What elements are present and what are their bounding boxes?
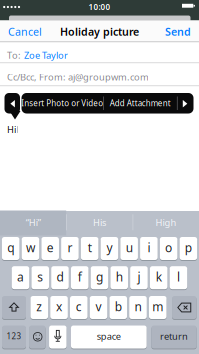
button[interactable]: o	[160, 236, 177, 260]
button[interactable]: i	[140, 236, 158, 260]
staticText: v	[95, 299, 101, 315]
button[interactable]: Cc/Bcc, From: aj@groupwm.com	[0, 66, 199, 87]
button[interactable]: 123	[2, 325, 26, 349]
button[interactable]: space	[71, 325, 147, 349]
staticText: 10:00	[88, 2, 110, 12]
button[interactable]: v	[90, 295, 107, 319]
button[interactable]: n	[129, 295, 147, 319]
staticText: Holiday picture	[60, 24, 139, 39]
button[interactable]: f	[71, 266, 88, 290]
staticText: To:	[7, 49, 21, 61]
staticText: space	[97, 330, 121, 342]
button[interactable]: e	[41, 236, 59, 260]
button[interactable]: a	[12, 266, 29, 290]
button[interactable]: t	[81, 236, 98, 260]
button[interactable]: w	[22, 236, 39, 260]
button[interactable]: r	[61, 236, 79, 260]
button[interactable]: d	[51, 266, 69, 290]
staticText: 123	[6, 331, 21, 341]
button[interactable]: “Hi”	[0, 211, 66, 234]
button[interactable]: His	[66, 211, 132, 234]
button[interactable]: Cancel	[8, 24, 42, 39]
staticText: Add Attachment	[110, 98, 171, 108]
staticText: p	[185, 240, 192, 256]
staticText: g	[96, 269, 103, 285]
button[interactable]: l	[170, 266, 187, 290]
staticText: Insert Photo or Video	[21, 98, 103, 108]
button[interactable]: y	[101, 236, 118, 260]
button[interactable]: m	[149, 295, 166, 319]
staticText: Zoe Taylor	[24, 49, 68, 61]
staticText: return	[160, 330, 188, 342]
button[interactable]: Insert Photo or Video	[20, 93, 104, 113]
button[interactable]: j	[130, 266, 148, 290]
staticText: l	[177, 269, 180, 285]
staticText: h	[116, 269, 123, 285]
button[interactable]: k	[150, 266, 167, 290]
button[interactable]: return	[151, 325, 197, 349]
staticText: w	[26, 240, 35, 256]
staticText: d	[56, 269, 63, 285]
staticText: Hi	[7, 123, 16, 136]
button[interactable]: Previous	[4, 93, 20, 113]
staticText: b	[115, 299, 122, 315]
button[interactable]: Delete	[172, 295, 197, 319]
staticText: His	[93, 216, 106, 228]
staticText: x	[56, 299, 62, 315]
staticText: Send	[165, 24, 191, 39]
button[interactable]: g	[91, 266, 108, 290]
button[interactable]: c	[70, 295, 88, 319]
button[interactable]: Next	[177, 93, 193, 113]
staticText: t	[88, 240, 92, 256]
staticText: y	[106, 240, 112, 256]
button[interactable]: Dictate	[49, 325, 66, 349]
staticText: i	[147, 240, 150, 256]
staticText: o	[165, 240, 172, 256]
staticText: “Hi”	[26, 216, 41, 228]
staticText: u	[126, 240, 133, 256]
button[interactable]: Send	[165, 24, 191, 39]
button[interactable]: x	[50, 295, 68, 319]
staticText: f	[78, 269, 82, 285]
button[interactable]: Add Attachment	[104, 93, 176, 113]
button[interactable]: Emoji	[29, 325, 45, 349]
staticText: m	[152, 299, 163, 315]
staticText: k	[156, 269, 162, 285]
staticText: s	[37, 269, 43, 285]
staticText: a	[17, 269, 24, 285]
staticText: r	[67, 240, 72, 256]
button[interactable]: p	[180, 236, 197, 260]
staticText: q	[7, 240, 14, 256]
button[interactable]: u	[120, 236, 138, 260]
button[interactable]: h	[110, 266, 128, 290]
button[interactable]: s	[31, 266, 49, 290]
button[interactable]: q	[2, 236, 19, 260]
staticText: Cancel	[8, 24, 42, 39]
staticText: e	[47, 240, 54, 256]
button[interactable]: Shift	[2, 295, 26, 319]
staticText: n	[134, 299, 141, 315]
staticText: c	[76, 299, 82, 315]
button[interactable]: b	[109, 295, 127, 319]
button[interactable]: High	[133, 211, 199, 234]
staticText: Cc/Bcc, From: aj@groupwm.com	[7, 71, 149, 83]
staticText: j	[137, 269, 140, 285]
button[interactable]: To:	[0, 45, 199, 65]
staticText: High	[155, 216, 176, 228]
staticText: z	[36, 299, 42, 315]
button[interactable]: z	[30, 295, 48, 319]
